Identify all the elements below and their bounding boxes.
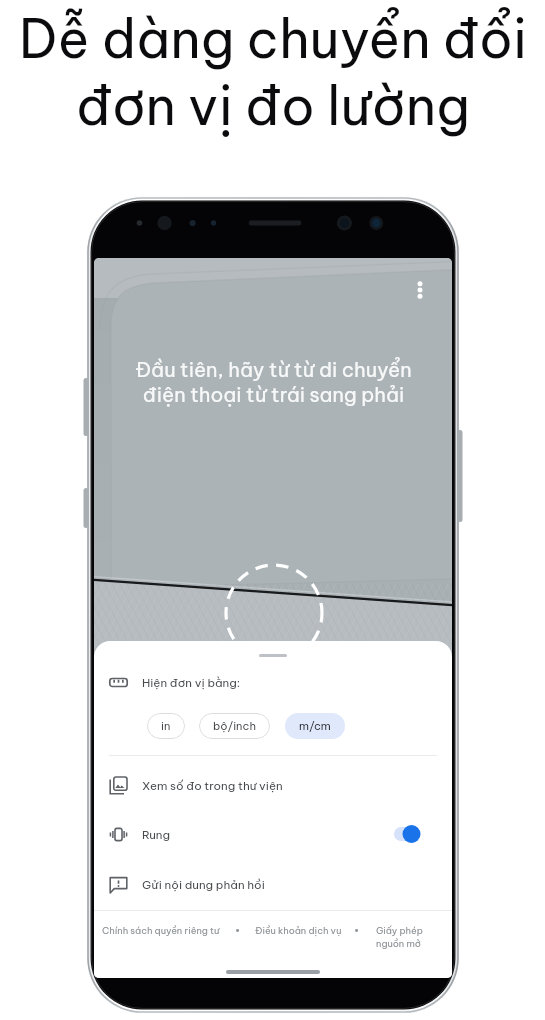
staticText: bộ/inch xyxy=(213,719,256,733)
button[interactable]: Giấy phép nguồn mở xyxy=(376,925,423,949)
button[interactable]: bộ/inch xyxy=(199,713,270,739)
staticText: Xem số đo trong thư viện xyxy=(142,778,283,793)
button[interactable]: Hiện đơn vị bằng: xyxy=(94,664,452,700)
button[interactable]: m/cm xyxy=(285,713,345,739)
staticText: Dễ dàng chuyển đổi xyxy=(19,5,527,72)
staticText: Hiện đơn vị bằng: xyxy=(142,675,241,690)
button[interactable]: More options xyxy=(403,273,437,307)
button[interactable]: Xem số đo trong thư viện xyxy=(94,762,452,808)
button[interactable]: Vibration toggle xyxy=(394,823,428,845)
button[interactable]: Chính sách quyền riêng tư xyxy=(102,925,220,937)
staticText: • xyxy=(354,925,360,937)
button[interactable]: in xyxy=(147,713,185,739)
staticText: đơn vị đo lường xyxy=(76,72,470,139)
staticText: Đầu tiên, hãy từ từ di chuyển điện thoại… xyxy=(135,357,412,407)
staticText: Rung xyxy=(142,827,171,842)
button[interactable]: Rung xyxy=(94,811,452,857)
staticText: Gửi nội dung phản hồi xyxy=(142,877,265,892)
button[interactable]: Điều khoản dịch vụ xyxy=(255,925,342,937)
staticText: in xyxy=(161,719,171,733)
button[interactable]: Gửi nội dung phản hồi xyxy=(94,861,452,907)
staticText: • xyxy=(235,925,241,937)
staticText: m/cm xyxy=(299,719,331,733)
